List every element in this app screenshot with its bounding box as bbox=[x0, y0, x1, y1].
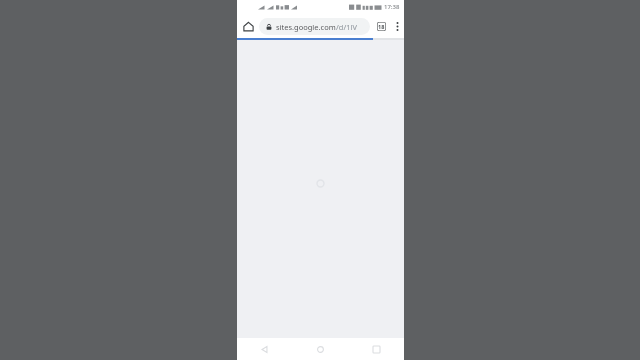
staticText: sites.google.com bbox=[276, 22, 336, 32]
button[interactable]: Recent apps bbox=[348, 338, 404, 360]
button[interactable]: Home bbox=[237, 14, 259, 38]
staticText: 18 bbox=[378, 23, 385, 30]
staticText: /d/1lV bbox=[336, 22, 357, 32]
staticText: 17:38 bbox=[384, 3, 400, 11]
button[interactable]: Tabs bbox=[372, 14, 390, 38]
button[interactable]: More options bbox=[390, 14, 404, 38]
button[interactable]: Back bbox=[237, 338, 292, 360]
button[interactable]: Home bbox=[292, 338, 348, 360]
button[interactable]: sites.google.com bbox=[259, 18, 370, 35]
